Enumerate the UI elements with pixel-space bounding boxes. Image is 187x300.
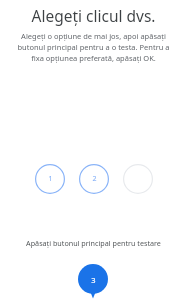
staticText: Apăsați butonul principal pentru testare xyxy=(8,238,179,248)
staticText: 2 xyxy=(92,174,97,184)
staticText: 3 xyxy=(91,275,96,285)
staticText: Alegeți clicul dvs. xyxy=(0,5,187,26)
staticText: 1 xyxy=(48,174,53,184)
button[interactable]: Main button 3 xyxy=(77,263,109,300)
button[interactable]: Option 2 xyxy=(79,164,109,194)
button[interactable]: Option 1 xyxy=(35,164,65,194)
button[interactable]: Option 3 xyxy=(123,164,153,194)
staticText: Alegeți o opțiune de mai jos, apoi apăsa… xyxy=(12,31,175,63)
